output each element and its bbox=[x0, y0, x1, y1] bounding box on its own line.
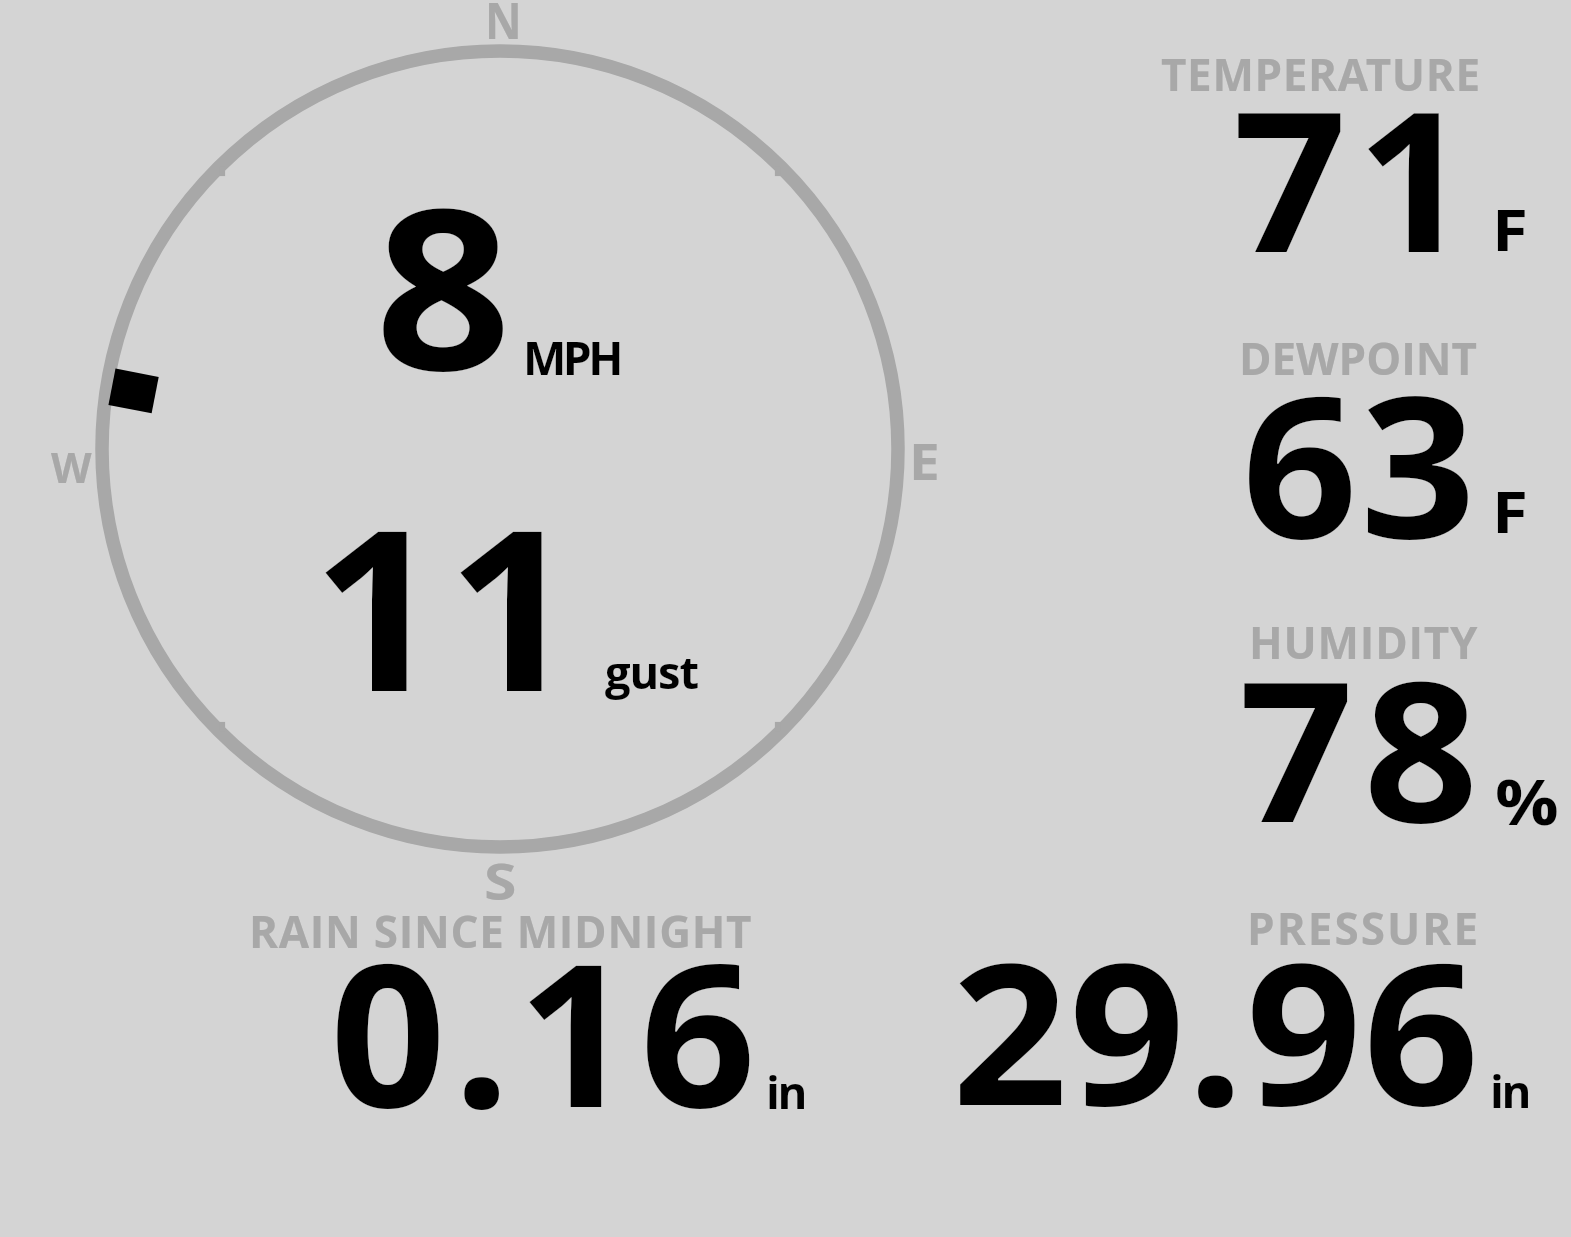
staticText: F bbox=[1492, 471, 1528, 550]
button[interactable]: Wind direction and speed dial bbox=[20, 0, 980, 900]
staticText: MPH bbox=[523, 326, 620, 389]
staticText: 78 bbox=[1239, 614, 1488, 879]
staticText: RAIN SINCE MIDNIGHT bbox=[249, 901, 753, 961]
staticText: PRESSURE bbox=[1247, 898, 1481, 958]
button[interactable]: TEMPERATURE bbox=[1140, 30, 1571, 300]
staticText: DEWPOINT bbox=[1239, 328, 1477, 388]
staticText: 0.16 bbox=[330, 897, 764, 1165]
staticText: 63 bbox=[1242, 328, 1479, 595]
staticText: 71 bbox=[1233, 45, 1481, 308]
staticText: HUMIDITY bbox=[1249, 612, 1479, 672]
staticText: in bbox=[766, 1060, 805, 1122]
button[interactable]: RAIN SINCE MIDNIGHT bbox=[230, 890, 850, 1160]
button[interactable]: PRESSURE bbox=[930, 890, 1571, 1160]
staticText: 29.96 bbox=[952, 895, 1481, 1163]
staticText: 11 bbox=[312, 454, 583, 756]
staticText: E bbox=[909, 427, 941, 495]
staticText: S bbox=[484, 847, 517, 915]
button[interactable]: DEWPOINT bbox=[1140, 315, 1571, 585]
staticText: in bbox=[1490, 1059, 1529, 1121]
staticText: F bbox=[1492, 189, 1528, 268]
button[interactable]: HUMIDITY bbox=[1140, 600, 1571, 870]
staticText: N bbox=[485, 0, 522, 54]
staticText: TEMPERATURE bbox=[1161, 44, 1481, 104]
staticText: 8 bbox=[375, 131, 512, 435]
staticText: W bbox=[51, 438, 92, 495]
staticText: gust bbox=[605, 641, 698, 703]
staticText: % bbox=[1495, 759, 1559, 843]
